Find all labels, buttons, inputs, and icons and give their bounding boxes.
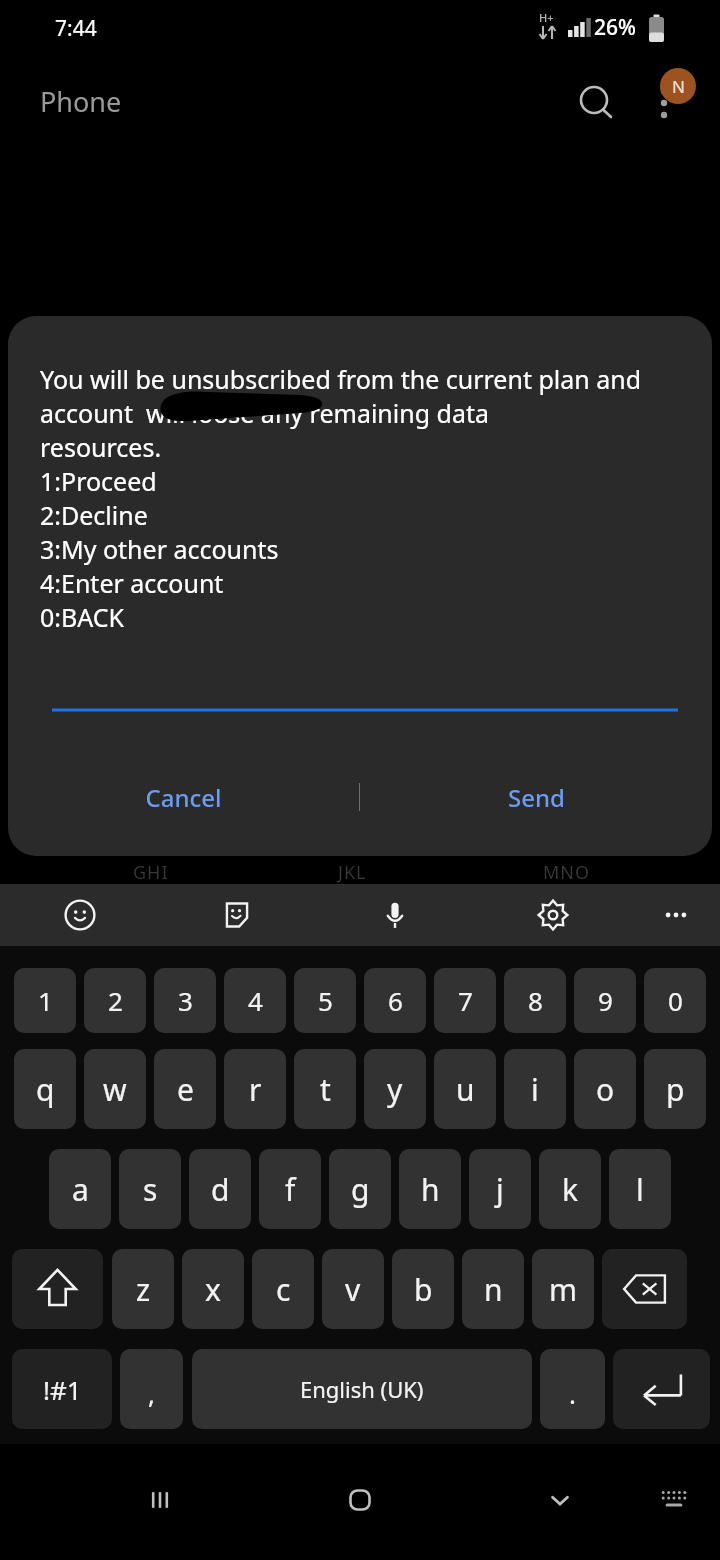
staticText: 0 — [668, 983, 683, 1018]
button[interactable]: Account — [660, 68, 696, 104]
button[interactable]: p — [644, 1049, 706, 1129]
staticText: w — [103, 1069, 127, 1110]
button[interactable]: h — [399, 1149, 461, 1229]
staticText: m — [549, 1269, 578, 1310]
button[interactable]: q — [14, 1049, 76, 1129]
staticText: 4 — [248, 983, 263, 1018]
staticText: . — [569, 1376, 576, 1411]
button[interactable]: w — [84, 1049, 146, 1129]
button[interactable]: s — [119, 1149, 181, 1229]
button[interactable]: Shift — [12, 1249, 103, 1329]
staticText: 3:My other accounts — [40, 532, 279, 566]
button[interactable]: Home — [330, 1470, 390, 1530]
staticText: o — [596, 1069, 615, 1110]
button[interactable]: 9 — [574, 968, 636, 1033]
staticText: 26% — [594, 13, 636, 42]
button[interactable]: Hide keyboard — [530, 1470, 590, 1530]
button[interactable]: k — [539, 1149, 601, 1229]
button[interactable]: 4 — [224, 968, 286, 1033]
button[interactable]: Send — [360, 762, 712, 832]
button[interactable]: o — [574, 1049, 636, 1129]
button[interactable]: n — [462, 1249, 524, 1329]
button[interactable]: f — [259, 1149, 321, 1229]
button[interactable]: j — [469, 1149, 531, 1229]
button[interactable]: 6 — [364, 968, 426, 1033]
button[interactable]: x — [182, 1249, 244, 1329]
staticText: g — [351, 1169, 370, 1210]
staticText: N — [672, 75, 685, 98]
button[interactable]: m — [532, 1249, 594, 1329]
staticText: 6 — [388, 983, 403, 1018]
button[interactable]: Search — [566, 73, 626, 133]
staticText: a — [72, 1169, 89, 1210]
staticText: 7 — [458, 983, 473, 1018]
button[interactable]: y — [364, 1049, 426, 1129]
button[interactable]: e — [154, 1049, 216, 1129]
staticText: 1:Proceed — [40, 464, 157, 498]
staticText: 7:44 — [55, 14, 97, 43]
button[interactable]: Recents — [130, 1470, 190, 1530]
staticText: H+ — [539, 10, 554, 25]
button[interactable]: z — [112, 1249, 174, 1329]
staticText: l — [636, 1169, 644, 1210]
button[interactable]: g — [329, 1149, 391, 1229]
staticText: 5 — [318, 983, 333, 1018]
button[interactable]: !#1 — [12, 1349, 112, 1429]
button[interactable]: t — [294, 1049, 356, 1129]
staticText: 0:BACK — [40, 600, 125, 634]
button[interactable]: Emoji — [50, 885, 110, 945]
staticText: h — [421, 1169, 440, 1210]
button[interactable]: Voice input — [365, 885, 425, 945]
staticText: 2 — [108, 983, 123, 1018]
button[interactable]: Stickers — [207, 885, 267, 945]
button[interactable]: Settings — [523, 885, 583, 945]
staticText: k — [562, 1169, 579, 1210]
button[interactable]: 1 — [14, 968, 76, 1033]
button[interactable]: 0 — [644, 968, 706, 1033]
button[interactable]: 8 — [504, 968, 566, 1033]
button[interactable]: a — [49, 1149, 111, 1229]
staticText: 3 — [178, 983, 193, 1018]
button[interactable]: Enter — [613, 1349, 710, 1429]
staticText: v — [345, 1269, 361, 1310]
staticText: r — [249, 1069, 262, 1110]
staticText: d — [211, 1169, 230, 1210]
button[interactable]: 2 — [84, 968, 146, 1033]
staticText: English (UK) — [300, 1374, 424, 1404]
staticText: n — [484, 1269, 503, 1310]
button[interactable]: 7 — [434, 968, 496, 1033]
staticText: i — [531, 1069, 539, 1110]
button[interactable]: More options — [644, 73, 704, 133]
button[interactable]: r — [224, 1049, 286, 1129]
staticText: s — [143, 1169, 158, 1210]
button[interactable]: u — [434, 1049, 496, 1129]
staticText: account will loose any remaining data — [40, 396, 490, 430]
staticText: !#1 — [43, 1372, 82, 1407]
button[interactable]: , — [120, 1349, 183, 1429]
staticText: Phone — [40, 83, 122, 120]
staticText: j — [496, 1169, 504, 1210]
staticText: 8 — [528, 983, 543, 1018]
button[interactable]: Change keyboard — [646, 1470, 702, 1526]
button[interactable]: d — [189, 1149, 251, 1229]
staticText: f — [285, 1169, 296, 1210]
button[interactable]: . — [540, 1349, 605, 1429]
button[interactable]: l — [609, 1149, 671, 1229]
button[interactable]: 5 — [294, 968, 356, 1033]
button[interactable]: i — [504, 1049, 566, 1129]
button[interactable]: b — [392, 1249, 454, 1329]
staticText: q — [36, 1069, 55, 1110]
staticText: e — [177, 1069, 194, 1110]
button[interactable]: 3 — [154, 968, 216, 1033]
button[interactable]: v — [322, 1249, 384, 1329]
staticText: 2:Decline — [40, 498, 148, 532]
staticText: u — [456, 1069, 475, 1110]
button[interactable]: More — [646, 885, 706, 945]
staticText: 4:Enter account — [40, 566, 224, 600]
button[interactable]: English (UK) — [192, 1349, 532, 1429]
staticText: p — [666, 1069, 685, 1110]
button[interactable]: Cancel — [8, 762, 359, 832]
button[interactable]: c — [252, 1249, 314, 1329]
staticText: c — [276, 1269, 291, 1310]
button[interactable]: Backspace — [602, 1249, 687, 1329]
